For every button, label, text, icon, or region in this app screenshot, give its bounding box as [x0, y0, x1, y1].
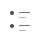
button[interactable]: Morning Walk [0, 11, 41, 19]
button[interactable]: Evening Run [0, 24, 41, 32]
